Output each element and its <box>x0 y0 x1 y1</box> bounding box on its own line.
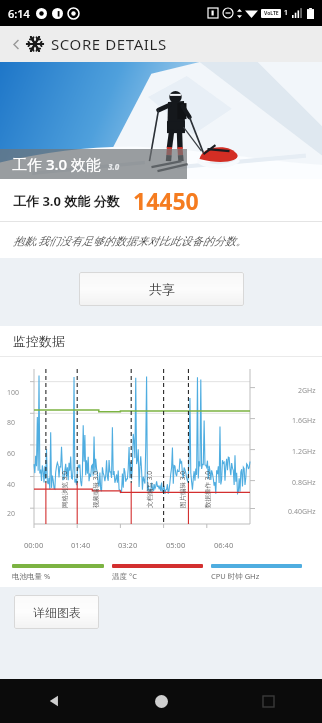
button[interactable]: 详细图表 <box>14 595 99 629</box>
staticText: 监控数据 <box>13 333 65 349</box>
staticText: 1 <box>284 8 289 18</box>
staticText: 视频编辑 3.0 <box>91 471 100 508</box>
staticText: 01:40 <box>71 540 91 550</box>
staticText: 60 <box>7 449 16 459</box>
staticText: 数据操作 3.0 <box>203 471 212 508</box>
staticText: 电池电量 % <box>12 571 51 581</box>
staticText: 抱歉,我们没有足够的数据来对比此设备的分数。 <box>13 233 247 248</box>
staticText: CPU 时钟 GHz <box>211 571 260 581</box>
staticText: 温度 °C <box>112 571 137 581</box>
staticText: 1.2GHz <box>292 447 316 457</box>
staticText: SCORE DETAILS <box>51 34 167 54</box>
staticText: 05:00 <box>166 540 186 550</box>
staticText: 3.0 <box>108 161 120 172</box>
staticText: 100 <box>7 388 20 398</box>
staticText: 网格浏览 3.0 <box>60 471 69 508</box>
staticText: 工作 3.0 效能 分数 <box>13 192 120 210</box>
staticText: 详细图表 <box>33 605 81 620</box>
staticText: 0.40GHz <box>288 507 316 517</box>
staticText: 14450 <box>133 185 199 216</box>
staticText: 图片编辑 3.0 <box>178 471 187 508</box>
staticText: 2GHz <box>298 386 316 396</box>
staticText: VoLTE <box>264 10 279 17</box>
staticText: 0.8GHz <box>292 478 316 488</box>
staticText: 20 <box>7 509 16 519</box>
button[interactable]: Home <box>108 679 215 723</box>
staticText: 40 <box>7 480 16 490</box>
staticText: 80 <box>7 418 16 428</box>
button[interactable]: Recent apps <box>215 679 322 723</box>
button[interactable]: Back <box>6 34 26 54</box>
staticText: 03:20 <box>118 540 138 550</box>
staticText: 文档编写 3.0 <box>145 471 154 508</box>
staticText: 共享 <box>149 281 175 297</box>
staticText: 工作 3.0 效能 <box>12 154 102 174</box>
staticText: 1.6GHz <box>292 416 316 426</box>
button[interactable]: Back <box>0 679 108 723</box>
staticText: 6:14 <box>8 6 30 21</box>
staticText: 06:40 <box>214 540 234 550</box>
button[interactable]: 共享 <box>79 272 244 306</box>
staticText: 00:00 <box>24 540 44 550</box>
